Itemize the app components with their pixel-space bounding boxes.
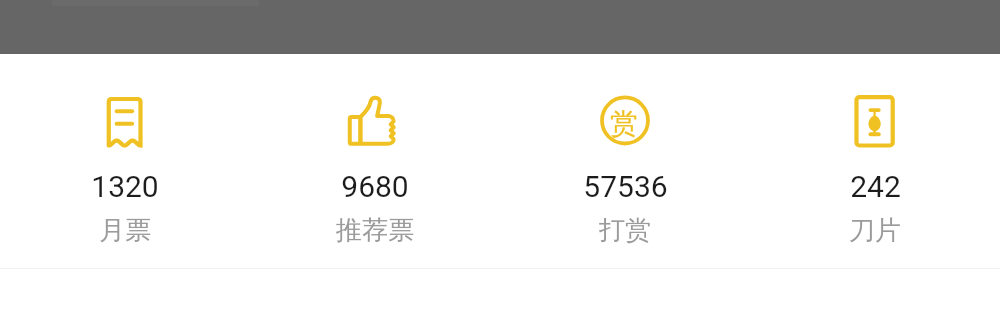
staticText: 57536: [583, 169, 668, 204]
staticText: 1320: [91, 169, 159, 204]
button[interactable]: Blades: [750, 54, 1000, 268]
staticText: 刀片: [849, 214, 901, 247]
other: Monthly tickets: [98, 93, 152, 147]
button[interactable]: Monthly tickets: [0, 54, 250, 268]
staticText: 推荐票: [336, 214, 414, 247]
button[interactable]: Recommendation votes: [250, 54, 500, 268]
other: Recommendation votes: [348, 93, 402, 147]
staticText: 242: [850, 169, 901, 204]
staticText: 打赏: [599, 214, 651, 247]
staticText: 月票: [99, 214, 151, 247]
staticText: 赏: [610, 106, 638, 141]
other: Reward: [598, 93, 652, 147]
staticText: 9680: [341, 169, 409, 204]
other: Blades: [848, 93, 902, 147]
button[interactable]: Reward: [500, 54, 750, 268]
